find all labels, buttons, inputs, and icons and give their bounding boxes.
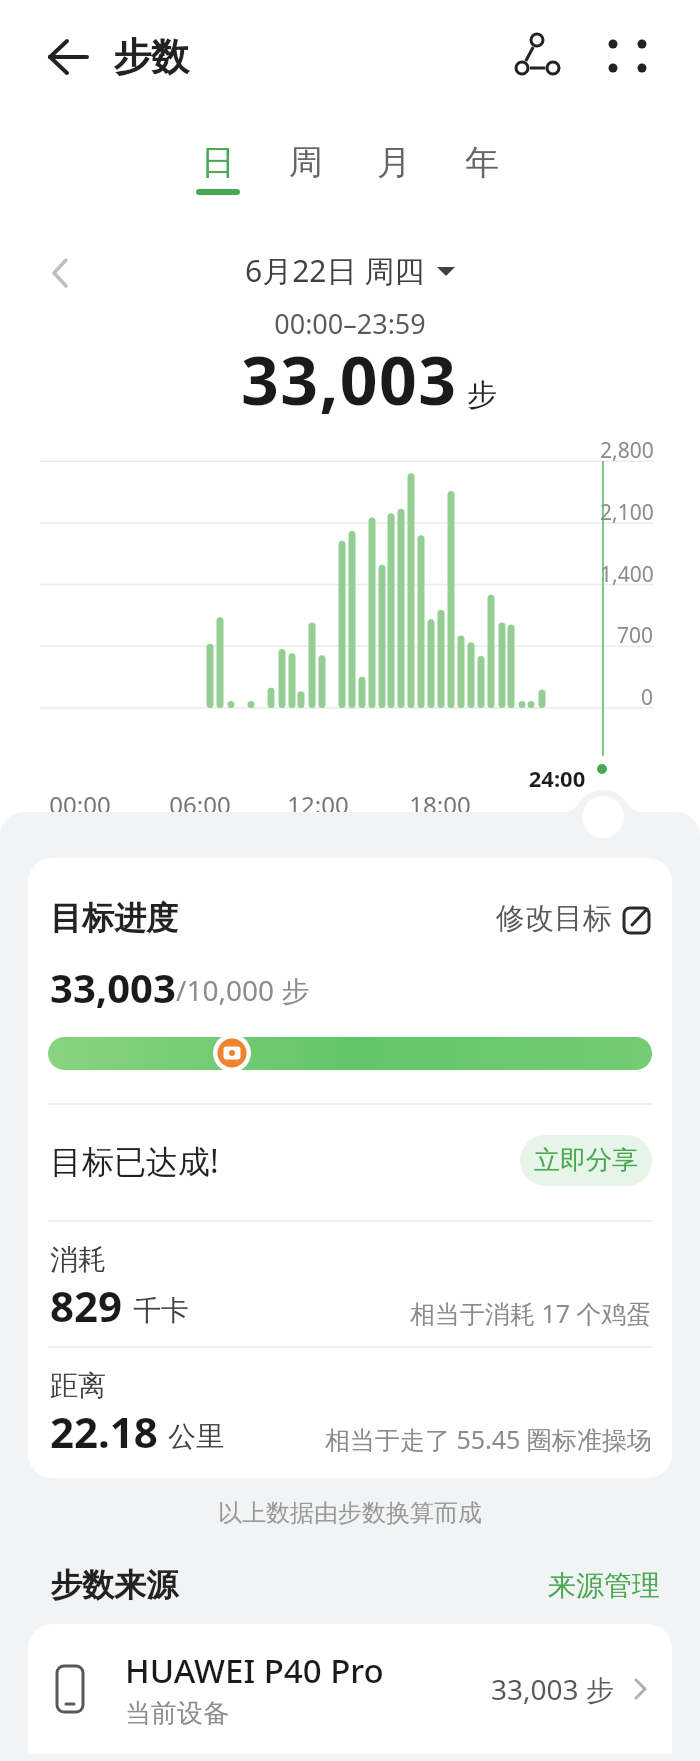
staticText: 来源管理 [548, 1568, 660, 1603]
staticText: 修改目标 [496, 900, 612, 937]
button[interactable]: 修改目标 [496, 900, 652, 937]
staticText: 33,003 [50, 960, 176, 1014]
staticText: 周 [289, 141, 323, 184]
staticText: 12:00 [278, 788, 358, 821]
button[interactable]: 6月22日 周四 [245, 250, 455, 291]
staticText: HUAWEI P40 Pro [125, 1648, 384, 1693]
staticText: 2,800 [600, 436, 654, 465]
staticText: /10,000 步 [176, 971, 310, 1009]
button[interactable]: 年 [438, 115, 526, 197]
staticText: 公里 [168, 1419, 224, 1454]
staticText: 00:00–23:59 [0, 305, 700, 348]
button[interactable] [509, 29, 565, 85]
button[interactable]: 周 [262, 115, 350, 197]
staticText: 年 [465, 141, 499, 184]
staticText: 829 [50, 1277, 123, 1334]
staticText: 相当于走了 55.45 圈标准操场 [325, 1422, 652, 1456]
staticText: 目标进度 [50, 898, 178, 938]
staticText: 0 [641, 683, 654, 712]
staticText: 22.18 [50, 1403, 158, 1460]
staticText: 00:00 [40, 788, 120, 821]
staticText: 2,100 [600, 498, 654, 527]
staticText: 18:00 [400, 788, 480, 821]
staticText: 距离 [50, 1368, 106, 1403]
staticText: 24:00 [512, 763, 602, 793]
staticText: 33,003 步 [491, 1670, 614, 1708]
staticText: 千卡 [133, 1293, 189, 1328]
staticText: 目标已达成! [50, 1139, 219, 1183]
button[interactable]: 日 [174, 115, 262, 197]
staticText: 日 [201, 141, 235, 184]
staticText: 1,400 [600, 560, 654, 589]
staticText: 6月22日 周四 [245, 250, 425, 291]
staticText: 步 [467, 376, 497, 414]
button[interactable] [36, 29, 92, 85]
button[interactable]: 立即分享 [520, 1135, 652, 1186]
staticText: 06:00 [160, 788, 240, 821]
staticText: 步数 [113, 33, 189, 81]
staticText: 33,003 [241, 334, 458, 424]
staticText: 当前设备 [125, 1697, 229, 1730]
staticText: 相当于消耗 17 个鸡蛋 [410, 1296, 652, 1330]
staticText: 步数来源 [50, 1565, 178, 1605]
staticText: 月 [377, 141, 411, 184]
button[interactable]: 来源管理 [548, 1568, 660, 1603]
button[interactable]: 月 [350, 115, 438, 197]
staticText: 700 [617, 621, 654, 650]
button[interactable]: HUAWEI P40 Pro [28, 1624, 672, 1754]
staticText: 消耗 [50, 1242, 106, 1277]
staticText: 立即分享 [534, 1144, 638, 1177]
button[interactable] [599, 29, 655, 85]
staticText: 以上数据由步数换算而成 [0, 1498, 700, 1528]
button[interactable] [36, 249, 84, 297]
button[interactable] [540, 770, 666, 850]
